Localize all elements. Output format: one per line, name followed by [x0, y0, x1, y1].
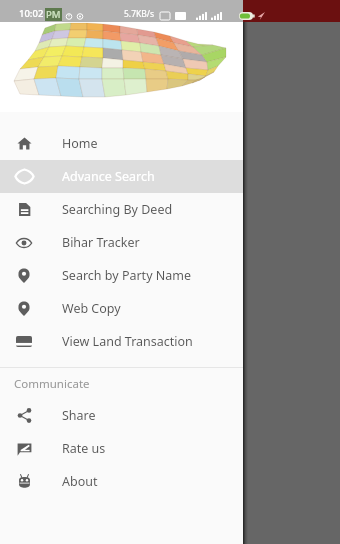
button[interactable]: View Land Transaction	[0, 325, 243, 358]
button[interactable]: Share	[0, 399, 243, 432]
staticText: Rate us	[62, 440, 106, 457]
staticText: Web Copy	[62, 300, 121, 317]
other: Home	[17, 136, 32, 151]
staticText: Searching By Deed	[62, 201, 173, 218]
staticText: Advance Search	[62, 168, 155, 185]
staticText: Share	[62, 407, 96, 424]
staticText: 10:02	[19, 7, 44, 20]
button[interactable]: Web Copy	[0, 292, 243, 325]
button[interactable]: Search by Party Name	[0, 259, 243, 292]
button[interactable]: Advance Search	[0, 160, 243, 193]
staticText: Communicate	[14, 376, 90, 392]
staticText: 5.7KB/s	[124, 8, 155, 20]
staticText: About	[62, 473, 98, 490]
button[interactable]: Searching By Deed	[0, 193, 243, 226]
staticText: View Land Transaction	[62, 333, 193, 350]
button[interactable]: Bihar Tracker	[0, 226, 243, 259]
button[interactable]: Home	[0, 127, 243, 160]
staticText: Search by Party Name	[62, 267, 192, 284]
staticText: Home	[62, 135, 98, 152]
staticText: PM	[46, 8, 61, 21]
button[interactable]: About	[0, 465, 243, 498]
staticText: Bihar Tracker	[62, 234, 140, 251]
button[interactable]: Rate us	[0, 432, 243, 465]
